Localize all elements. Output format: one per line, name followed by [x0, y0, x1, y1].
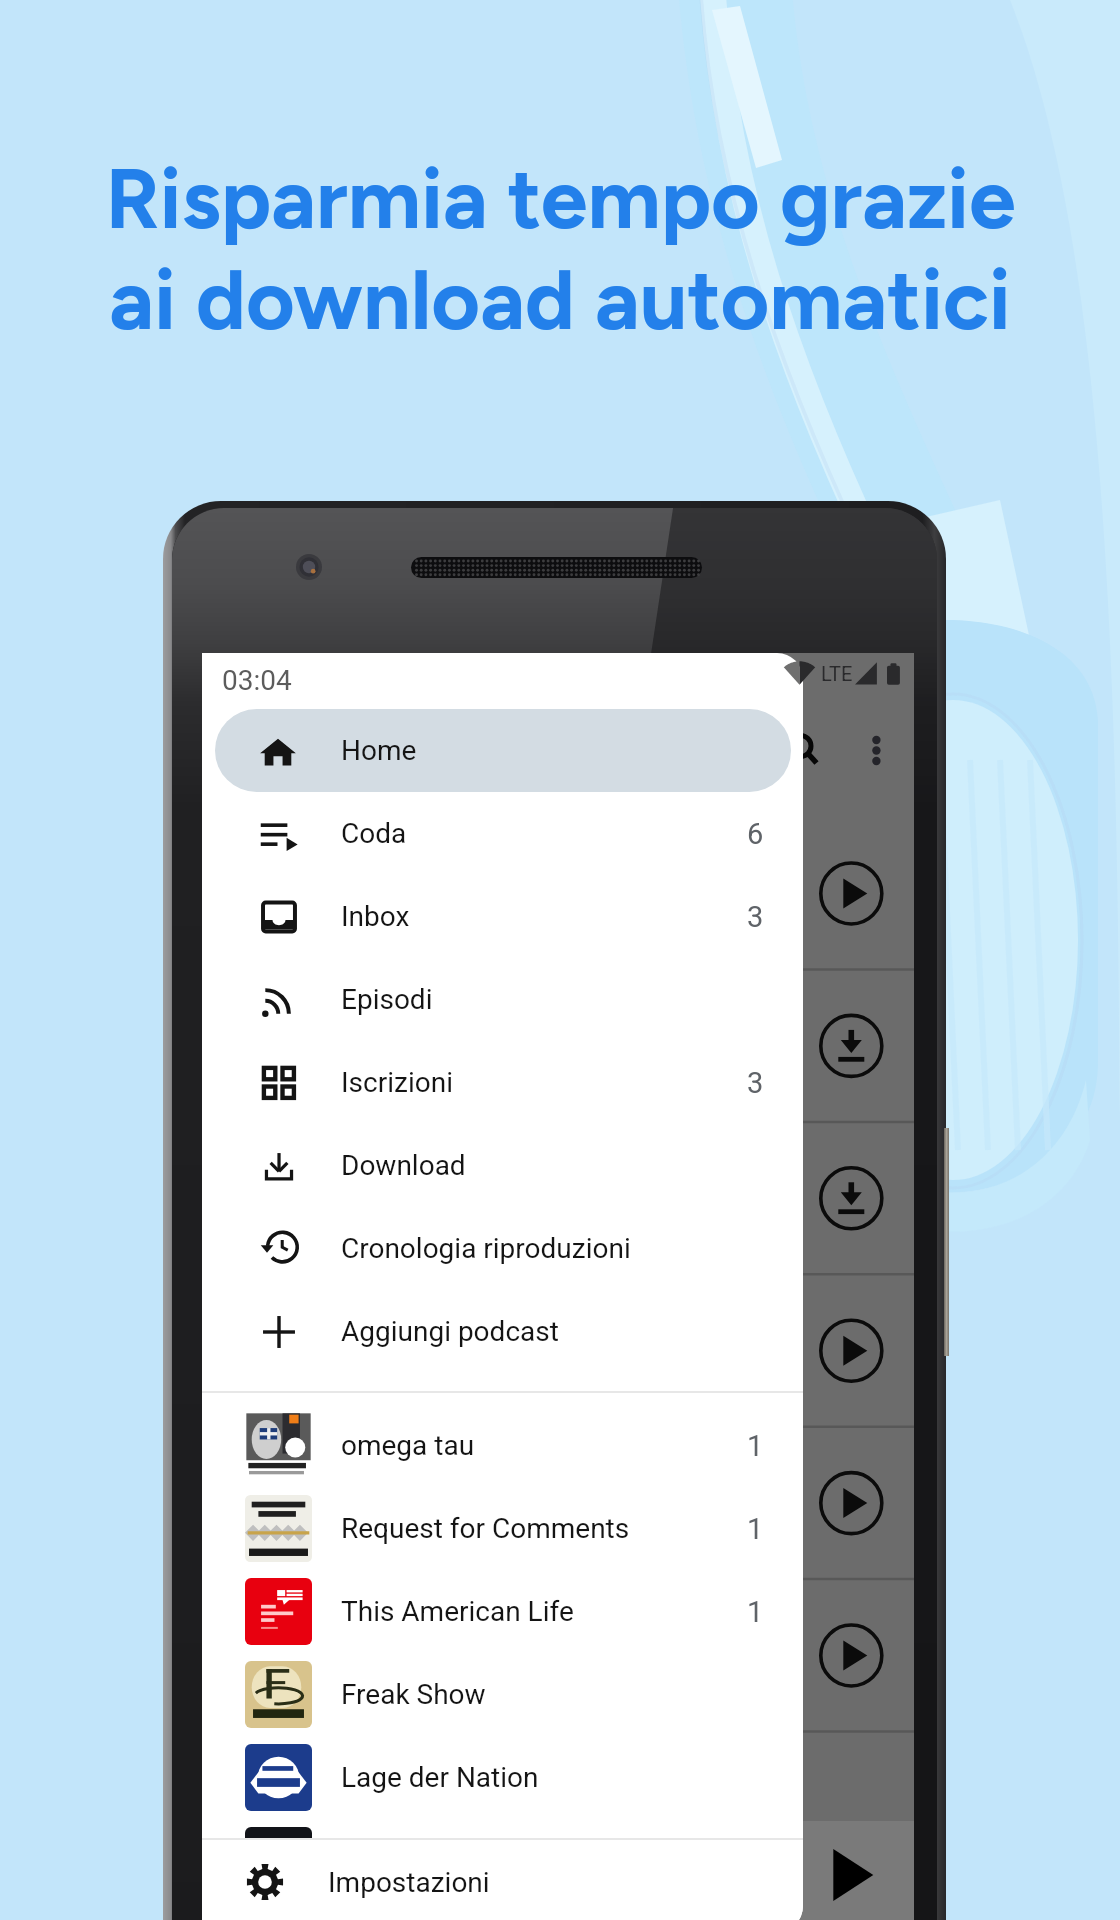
- staticText: 1: [747, 1595, 764, 1629]
- staticText: 3: [747, 1066, 764, 1100]
- staticText: Risparmia tempo grazie: [105, 148, 1016, 249]
- button[interactable]: Episodi: [202, 958, 803, 1041]
- staticText: Aggiungi podcast: [341, 1315, 559, 1348]
- staticText: 3: [747, 900, 764, 934]
- button[interactable]: Coda: [202, 792, 803, 875]
- staticText: This American Life: [341, 1595, 574, 1628]
- staticText: ai download automatici: [109, 249, 1011, 350]
- button[interactable]: Freak Show: [202, 1653, 803, 1736]
- staticText: Download: [341, 1149, 466, 1182]
- button[interactable]: Inbox: [202, 875, 803, 958]
- button[interactable]: This American Life: [202, 1570, 803, 1653]
- button[interactable]: Iscrizioni: [202, 1041, 803, 1124]
- staticText: Request for Comments: [341, 1512, 630, 1545]
- staticText: 1: [747, 1512, 764, 1546]
- staticText: Home: [341, 734, 417, 767]
- staticText: 6: [747, 817, 764, 851]
- button[interactable]: Lage der Nation: [202, 1736, 803, 1819]
- staticText: Cronologia riproduzioni: [341, 1232, 631, 1265]
- staticText: omega tau: [341, 1429, 475, 1462]
- button[interactable]: omega tau: [202, 1404, 803, 1487]
- button[interactable]: Aggiungi podcast: [202, 1290, 803, 1373]
- staticText: 03:04: [222, 664, 292, 697]
- staticText: Coda: [341, 817, 407, 850]
- staticText: 1: [747, 1429, 764, 1463]
- button[interactable]: Download: [202, 1124, 803, 1207]
- staticText: Freak Show: [341, 1678, 486, 1711]
- button[interactable]: Cronologia riproduzioni: [202, 1207, 803, 1290]
- button[interactable]: [202, 1819, 803, 1902]
- staticText: Inbox: [341, 900, 410, 933]
- staticText: Lage der Nation: [341, 1761, 539, 1794]
- staticText: Episodi: [341, 983, 433, 1016]
- button[interactable]: Request for Comments: [202, 1487, 803, 1570]
- button[interactable]: Home: [215, 709, 791, 792]
- staticText: LTE: [821, 662, 853, 685]
- staticText: Iscrizioni: [341, 1066, 453, 1099]
- button[interactable]: Impostazioni: [202, 1840, 803, 1920]
- staticText: Impostazioni: [328, 1866, 490, 1899]
